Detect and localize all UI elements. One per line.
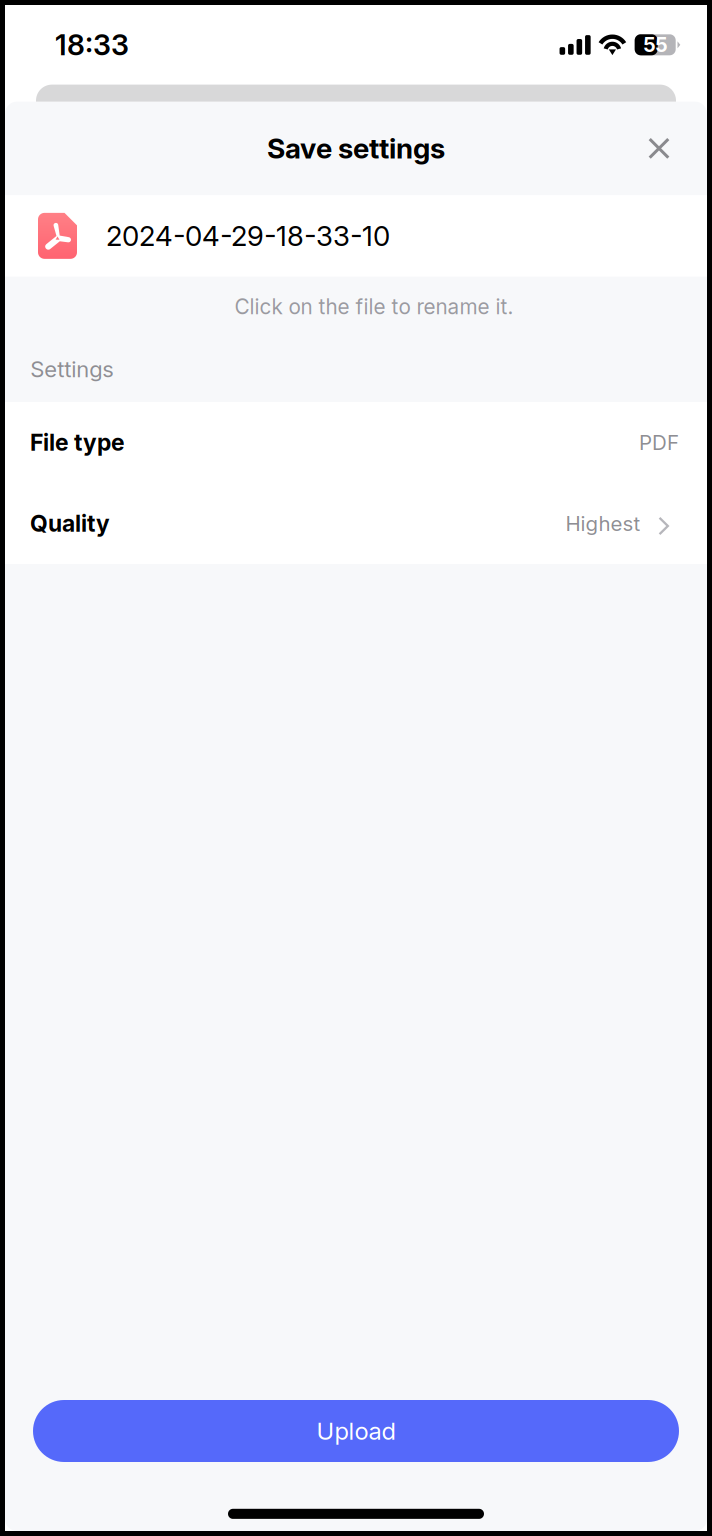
button[interactable]: 2024-04-29-18-33-10: [5, 195, 707, 277]
button[interactable]: Quality: [5, 483, 707, 564]
staticText: 2024-04-29-18-33-10: [106, 219, 390, 253]
button[interactable]: Close: [629, 118, 689, 178]
staticText: Highest: [565, 511, 640, 536]
staticText: Upload: [316, 1416, 395, 1445]
staticText: File type: [30, 429, 125, 456]
staticText: Settings: [30, 356, 114, 383]
staticText: Save settings: [267, 131, 445, 165]
button[interactable]: File type: [5, 402, 707, 483]
staticText: 55: [643, 33, 667, 57]
staticText: PDF: [639, 430, 679, 455]
button[interactable]: Upload: [33, 1400, 679, 1462]
staticText: Click on the file to rename it.: [234, 294, 513, 319]
staticText: Quality: [30, 510, 110, 537]
staticText: 18:33: [55, 27, 129, 62]
